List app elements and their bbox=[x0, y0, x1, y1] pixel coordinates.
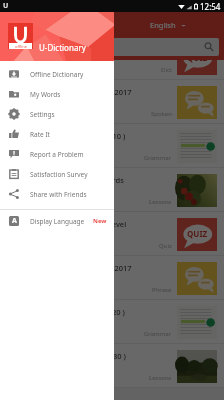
button[interactable]: Word of the Day 2016-2017 bbox=[0, 256, 224, 300]
staticText: Grammar bbox=[144, 154, 172, 162]
staticText: Display Language bbox=[30, 217, 85, 226]
other: Search bbox=[204, 42, 214, 52]
staticText: A bbox=[12, 216, 17, 226]
button[interactable]: My Words bbox=[0, 84, 114, 104]
staticText: Dict bbox=[161, 66, 172, 74]
staticText: Daily Conversation ( 10 ) bbox=[39, 131, 126, 141]
button[interactable]: Test Your English Level bbox=[0, 212, 224, 256]
button[interactable]: Daily Conversation ( 10 ) bbox=[0, 124, 224, 168]
button[interactable]: Search bbox=[6, 38, 219, 56]
staticText: 12:54 bbox=[200, 1, 221, 12]
staticText: Word of the Day 2016-2017 bbox=[35, 263, 132, 273]
button[interactable]: Ocean Words ( 12 ) bbox=[0, 36, 224, 80]
staticText: My Words bbox=[30, 90, 61, 99]
staticText: Lessons bbox=[149, 374, 172, 382]
button[interactable]: Settings bbox=[0, 104, 114, 124]
staticText: Rate It bbox=[30, 130, 50, 139]
staticText: Quiz bbox=[159, 242, 172, 250]
staticText: Satisfaction Survey bbox=[30, 170, 88, 179]
button[interactable]: Report a Problem bbox=[0, 144, 114, 164]
button[interactable]: Rate It bbox=[0, 124, 114, 144]
staticText: Daily Sentence ( 20 ) bbox=[53, 307, 125, 317]
staticText: U bbox=[3, 1, 9, 11]
button[interactable]: Fruits Vocabulary Words bbox=[0, 168, 224, 212]
button[interactable]: Offline Dictionary bbox=[0, 64, 114, 84]
staticText: Word of the Day 2016-2017 bbox=[35, 87, 132, 97]
staticText: Grammar bbox=[144, 330, 172, 338]
staticText: English bbox=[150, 20, 176, 30]
staticText: Report a Problem bbox=[30, 150, 84, 159]
staticText: QUIZ bbox=[187, 228, 208, 239]
button[interactable]: Nature Words ( 30 ) bbox=[0, 344, 224, 388]
button[interactable]: Share with Friends bbox=[0, 184, 114, 204]
button[interactable]: English bbox=[150, 20, 186, 30]
staticText: U-Dictionary bbox=[39, 42, 86, 53]
staticText: QUIZ bbox=[187, 52, 208, 63]
button[interactable]: Word of the Day 2016-2017 bbox=[0, 80, 224, 124]
staticText: Nature Words ( 30 ) bbox=[57, 351, 126, 361]
button[interactable]: Satisfaction Survey bbox=[0, 164, 114, 184]
staticText: Offline Dictionary bbox=[30, 70, 84, 79]
staticText: Ocean Words ( 12 ) bbox=[61, 43, 128, 53]
staticText: Phrase bbox=[152, 286, 172, 294]
button[interactable]: Open navigation drawer bbox=[6, 17, 22, 33]
staticText: Fruits Vocabulary Words bbox=[37, 175, 124, 185]
staticText: Settings bbox=[30, 110, 55, 119]
staticText: Test Your English Level bbox=[45, 219, 127, 229]
staticText: New bbox=[93, 217, 107, 225]
button[interactable]: Daily Sentence ( 20 ) bbox=[0, 300, 224, 344]
staticText: offline bbox=[15, 44, 27, 49]
button[interactable]: A bbox=[0, 211, 114, 231]
staticText: Lessons bbox=[149, 198, 172, 206]
staticText: Share with Friends bbox=[30, 190, 87, 199]
staticText: Spoken bbox=[151, 110, 172, 118]
